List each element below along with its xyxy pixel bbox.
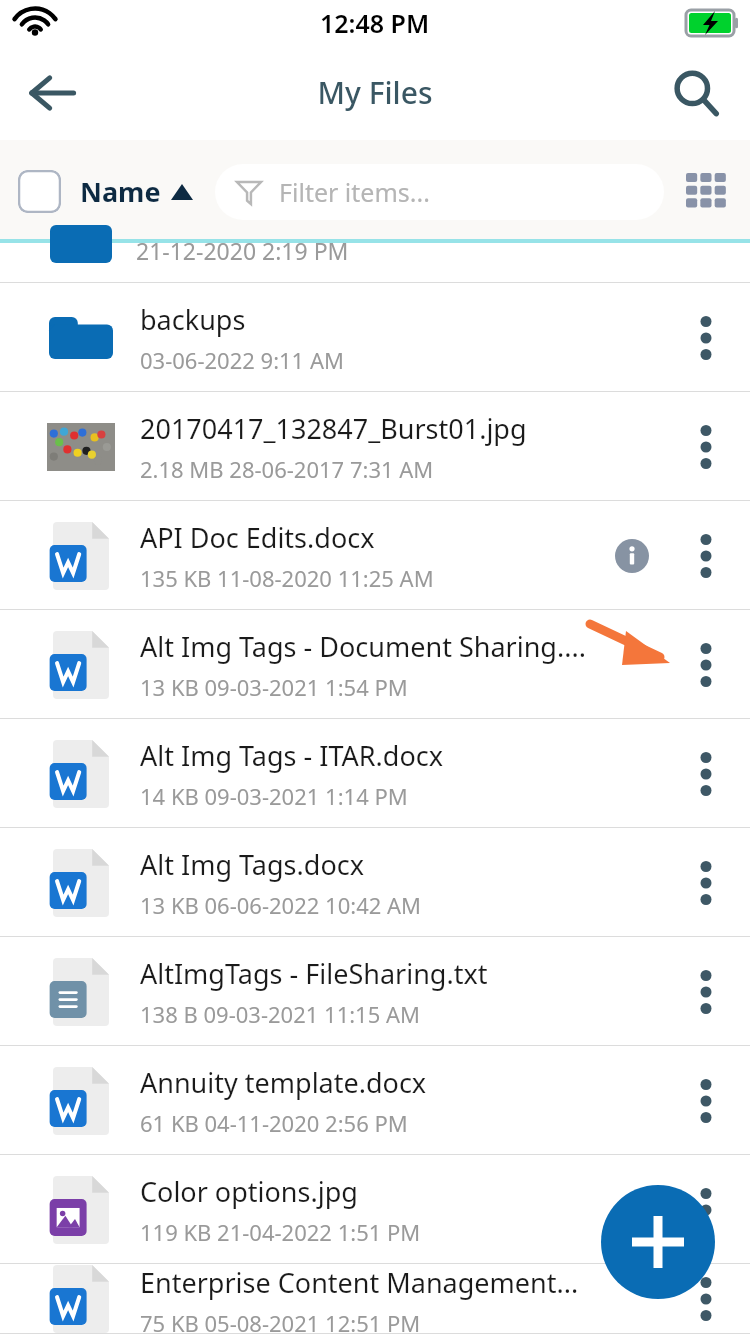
button[interactable]: backups <box>0 283 750 392</box>
button[interactable]: Color options.jpg <box>0 1155 750 1264</box>
staticText: backups <box>140 301 246 338</box>
staticText: 2.18 MB 28-06-2017 7:31 AM <box>140 454 434 484</box>
staticText: 135 KB 11-08-2020 11:25 AM <box>140 563 434 593</box>
button[interactable]: Alt Img Tags - Document Sharing.... <box>0 610 750 719</box>
button[interactable]: Select all <box>18 170 61 213</box>
staticText: Color options.jpg <box>140 1173 358 1210</box>
button[interactable]: Alt Img Tags.docx <box>0 828 750 937</box>
staticText: 20170417_132847_Burst01.jpg <box>140 410 527 447</box>
button[interactable]: 21-12-2020 2:19 PM <box>0 243 750 283</box>
button[interactable]: Grid view <box>682 167 732 217</box>
button[interactable]: API Doc Edits.docx <box>0 501 750 610</box>
button[interactable]: Add <box>601 1185 715 1299</box>
staticText: 13 KB 06-06-2022 10:42 AM <box>140 890 422 920</box>
staticText: 61 KB 04-11-2020 2:56 PM <box>140 1108 408 1138</box>
staticText: 75 KB 05-08-2021 12:51 PM <box>140 1308 421 1334</box>
button[interactable]: More options <box>670 392 742 501</box>
staticText: 03-06-2022 9:11 AM <box>140 345 344 375</box>
button[interactable]: More options <box>670 1046 742 1155</box>
button[interactable]: Alt Img Tags - ITAR.docx <box>0 719 750 828</box>
button[interactable]: More options <box>670 1264 742 1334</box>
staticText: API Doc Edits.docx <box>140 519 375 556</box>
staticText: 119 KB 21-04-2022 1:51 PM <box>140 1217 421 1247</box>
button[interactable]: Back <box>14 55 90 131</box>
staticText: 138 B 09-03-2021 11:15 AM <box>140 999 421 1029</box>
staticText: AltImgTags - FileSharing.txt <box>140 955 488 992</box>
staticText: Alt Img Tags.docx <box>140 846 364 883</box>
staticText: Filter items... <box>279 175 430 209</box>
button[interactable]: Annuity template.docx <box>0 1046 750 1155</box>
staticText: Alt Img Tags - ITAR.docx <box>140 737 444 774</box>
staticText: 13 KB 09-03-2021 1:54 PM <box>140 672 408 702</box>
button[interactable]: Search <box>658 55 734 131</box>
staticText: My Files <box>317 72 433 113</box>
button[interactable]: More options <box>670 501 742 610</box>
staticText: 12:48 PM <box>320 6 430 40</box>
button[interactable]: More options <box>670 1155 742 1264</box>
button[interactable]: More options <box>670 937 742 1046</box>
staticText: 21-12-2020 2:19 PM <box>136 235 349 266</box>
staticText: Alt Img Tags - Document Sharing.... <box>140 628 586 665</box>
button[interactable]: More options <box>670 283 742 392</box>
staticText: Enterprise Content Management... <box>140 1264 579 1301</box>
button[interactable]: More options <box>670 719 742 828</box>
staticText: Name <box>80 173 161 210</box>
button[interactable]: 20170417_132847_Burst01.jpg <box>0 392 750 501</box>
button[interactable]: Enterprise Content Management... <box>0 1264 750 1334</box>
button[interactable]: More options <box>670 610 742 719</box>
staticText: Annuity template.docx <box>140 1064 427 1101</box>
button[interactable]: More options <box>670 828 742 937</box>
button[interactable]: Name <box>80 173 193 210</box>
button[interactable]: AltImgTags - FileSharing.txt <box>0 937 750 1046</box>
button[interactable]: Details <box>606 530 658 582</box>
button[interactable]: Filter items... <box>215 164 664 220</box>
staticText: 14 KB 09-03-2021 1:14 PM <box>140 781 408 811</box>
